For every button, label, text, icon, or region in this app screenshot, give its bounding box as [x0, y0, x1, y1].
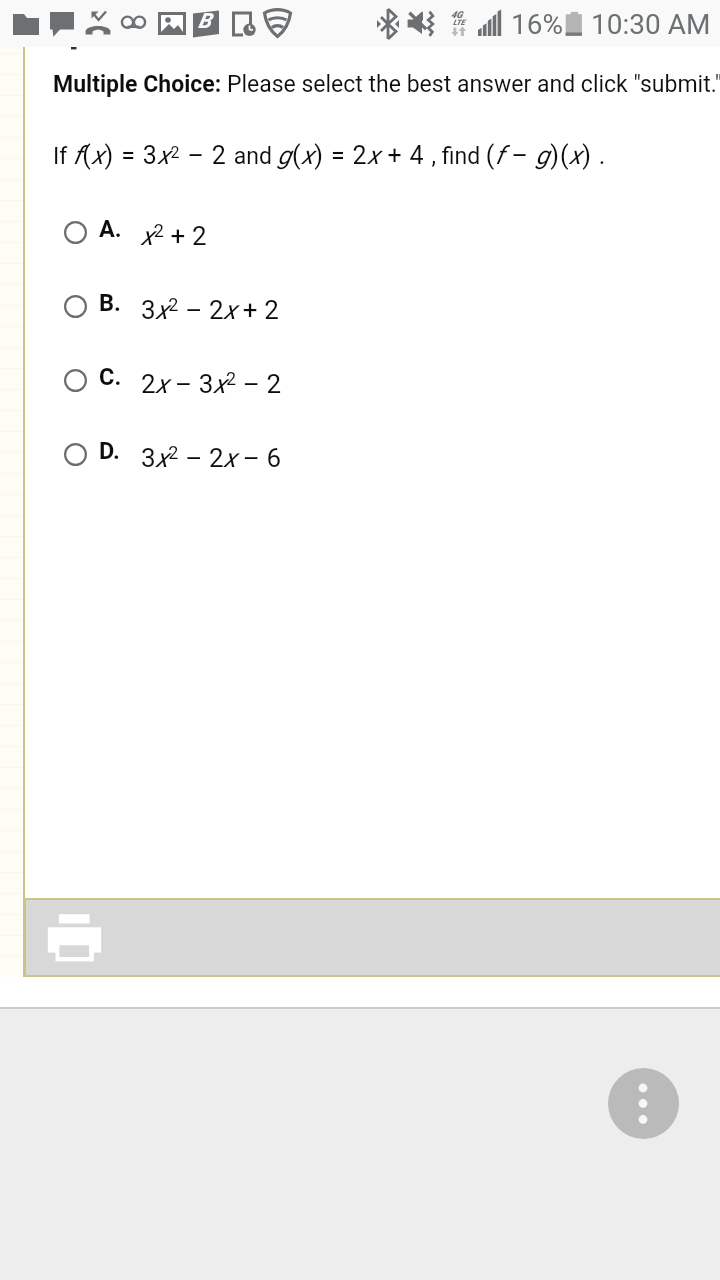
staticText: 4G [451, 9, 463, 20]
staticText: A. [99, 215, 122, 243]
staticText: 10:30 AM [591, 8, 711, 41]
staticText: C. [99, 363, 122, 391]
button[interactable]: D. [0, 443, 720, 513]
button[interactable]: C. [0, 369, 720, 439]
button[interactable]: A. [0, 221, 720, 291]
staticText: 3x2 – 2x + 2 [141, 294, 280, 326]
staticText: B [198, 9, 212, 34]
staticText: 16% [511, 8, 563, 41]
button[interactable]: Print [24, 898, 720, 977]
staticText: If f(x) = 3x2 – 2 and g(x) = 2x + 4 , fi… [53, 141, 607, 170]
staticText: D. [99, 437, 120, 465]
staticText: 2x – 3x2 – 2 [141, 368, 282, 400]
button[interactable]: More options [608, 1068, 679, 1139]
staticText: x2 + 2 [141, 220, 207, 252]
button[interactable]: B. [0, 295, 720, 365]
staticText: Multiple Choice: Please select the best … [53, 71, 720, 98]
staticText: 3x2 – 2x – 6 [141, 442, 282, 474]
staticText: B. [99, 289, 121, 317]
staticText: LTE [453, 18, 465, 27]
